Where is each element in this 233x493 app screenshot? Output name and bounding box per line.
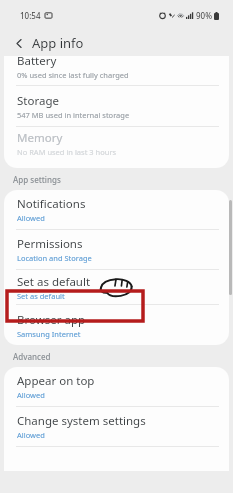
staticText: Notifications [17,196,86,212]
staticText: 547 MB used in internal storage [17,110,130,120]
staticText: Allowed [17,430,45,440]
staticText: Permissions [17,236,83,252]
staticText: Storage [17,93,59,109]
staticText: No RAM used in last 3 hours [17,147,117,157]
button[interactable]: Notifications [4,190,229,229]
staticText: 0% used since last fully charged [17,70,129,80]
staticText: Set as default [17,274,91,290]
staticText: Allowed [17,390,45,400]
button[interactable]: Battery [4,56,229,85]
staticText: Advanced [13,351,51,362]
button[interactable]: Memory [4,127,229,159]
button[interactable]: Storage [4,86,229,126]
staticText: App info [32,34,84,52]
staticText: App settings [13,174,61,185]
button[interactable]: Browser app [4,305,229,345]
staticText: Location and Storage [17,253,92,263]
staticText: Samsung Internet [17,329,81,339]
button[interactable]: Appear on top [4,367,229,406]
staticText: Change system settings [17,413,146,429]
staticText: 10:54 [20,10,41,21]
button[interactable]: Back [10,34,28,52]
button[interactable]: Change system settings [4,407,229,446]
staticText: Memory [17,130,63,146]
staticText: Battery [17,56,57,69]
staticText: Set as default [17,291,65,301]
staticText: Browser app [17,312,86,328]
button[interactable]: Permissions [4,230,229,269]
staticText: Allowed [17,213,45,223]
staticText: 90% [196,10,212,21]
button[interactable]: Set as default [4,270,229,304]
staticText: Appear on top [17,373,95,389]
